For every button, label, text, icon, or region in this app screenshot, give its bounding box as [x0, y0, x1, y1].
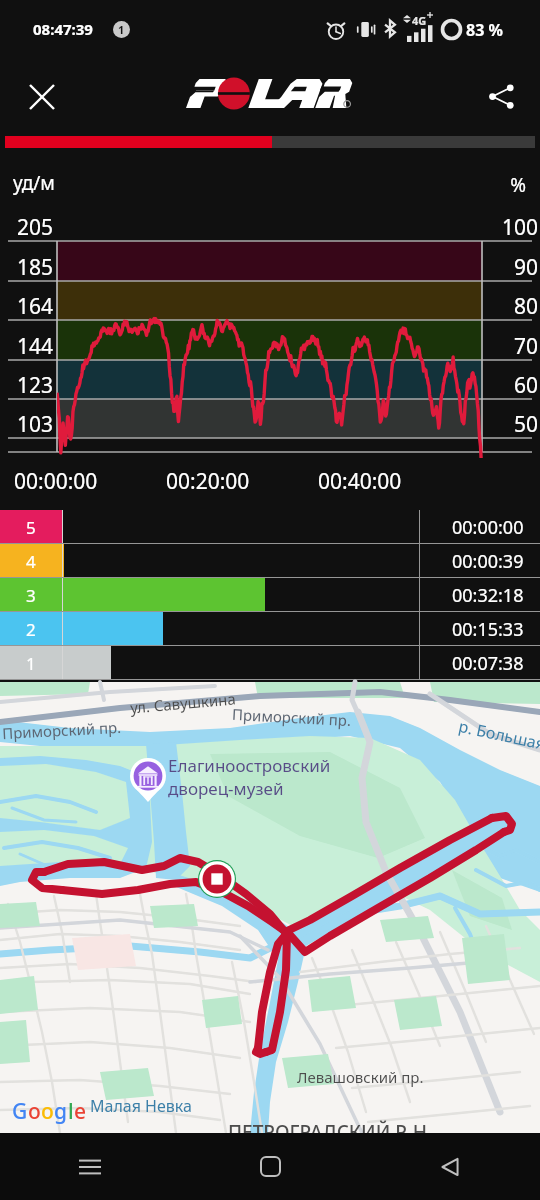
staticText: Приморский пр. — [2, 717, 122, 743]
button[interactable]: 2 — [0, 612, 540, 646]
staticText: 123 — [0, 371, 53, 400]
staticText: g — [54, 1097, 68, 1126]
staticText: 185 — [0, 253, 53, 282]
staticText: ул. Савушкина — [129, 688, 237, 718]
staticText: 00:40:00 — [318, 467, 402, 496]
staticText: 103 — [0, 410, 53, 439]
staticText: 50 — [484, 410, 538, 439]
staticText: 00:00:00 — [452, 515, 524, 540]
button[interactable]: Recents — [0, 1133, 180, 1200]
button[interactable]: 1 — [0, 646, 540, 680]
staticText: 3 — [26, 584, 36, 607]
staticText: Елагиноостровский — [168, 754, 331, 777]
staticText: 70 — [484, 332, 538, 361]
staticText: 164 — [0, 292, 53, 321]
staticText: e — [74, 1097, 87, 1126]
button[interactable]: Home — [180, 1133, 360, 1200]
staticText: 205 — [0, 213, 53, 242]
staticText: 00:15:33 — [452, 617, 524, 642]
staticText: ПЕТРОГРАДСКИЙ Р-Н — [228, 1119, 427, 1145]
staticText: 4 — [26, 550, 36, 573]
staticText: o — [28, 1097, 41, 1126]
staticText: 100 — [484, 213, 538, 242]
staticText: 00:00:39 — [452, 549, 524, 574]
staticText: 80 — [484, 292, 538, 321]
staticText: 00:00:00 — [14, 467, 98, 496]
staticText: o — [41, 1097, 54, 1126]
button[interactable]: 3 — [0, 578, 540, 612]
button[interactable]: Back — [360, 1133, 540, 1200]
staticText: 60 — [484, 371, 538, 400]
button[interactable]: 5 — [0, 510, 540, 544]
staticText: 144 — [0, 332, 53, 361]
staticText: уд/м — [13, 170, 55, 196]
staticText: 00:32:18 — [452, 583, 524, 608]
staticText: Левашовский пр. — [297, 1067, 424, 1087]
staticText: дворец-музей — [168, 777, 284, 800]
staticText: 1 — [118, 22, 125, 37]
staticText: 2 — [26, 618, 36, 641]
staticText: 90 — [484, 253, 538, 282]
staticText: G — [12, 1097, 28, 1126]
staticText: 4G — [412, 13, 427, 28]
staticText: 00:07:38 — [452, 651, 524, 676]
staticText: 1 — [26, 652, 36, 675]
staticText: 83 % — [466, 19, 503, 41]
staticText: 5 — [26, 516, 36, 539]
staticText: % — [470, 172, 526, 198]
staticText: Малая Невка — [90, 1095, 192, 1117]
button[interactable]: 4 — [0, 544, 540, 578]
staticText: р. Большая — [457, 715, 540, 755]
staticText: Приморский пр. — [232, 704, 352, 730]
button[interactable]: Close — [18, 73, 65, 120]
button[interactable]: Share — [478, 73, 525, 120]
staticText: 08:47:39 — [33, 19, 93, 39]
staticText: l — [68, 1097, 74, 1126]
staticText: 00:20:00 — [166, 467, 250, 496]
